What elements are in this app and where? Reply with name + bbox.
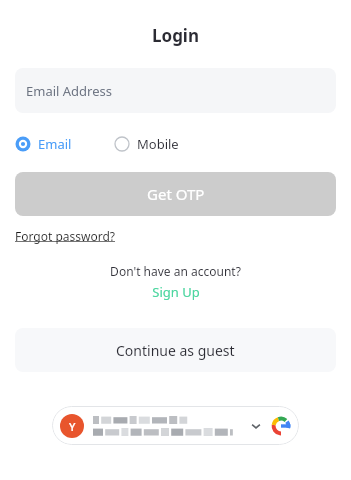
staticText: Login bbox=[0, 24, 351, 47]
staticText: Get OTP bbox=[147, 184, 205, 204]
button[interactable]: Sign in with Google bbox=[52, 406, 299, 445]
staticText: Don't have an account? bbox=[0, 263, 351, 279]
button[interactable]: Email Address bbox=[15, 68, 336, 113]
staticText: Y bbox=[69, 419, 76, 434]
button[interactable]: Forgot password? bbox=[15, 228, 116, 244]
button[interactable]: Sign Up bbox=[152, 283, 200, 301]
button[interactable]: Email bbox=[15, 135, 72, 153]
staticText: Continue as guest bbox=[116, 341, 235, 360]
button[interactable]: Continue as guest bbox=[15, 328, 336, 372]
button[interactable]: Get OTP bbox=[15, 172, 336, 216]
staticText: Email Address bbox=[26, 82, 112, 100]
button[interactable]: Mobile bbox=[114, 135, 179, 153]
staticText: Forgot password? bbox=[15, 228, 116, 244]
staticText: Sign Up bbox=[152, 283, 200, 301]
staticText: Mobile bbox=[137, 135, 179, 153]
staticText: Email bbox=[38, 135, 72, 153]
